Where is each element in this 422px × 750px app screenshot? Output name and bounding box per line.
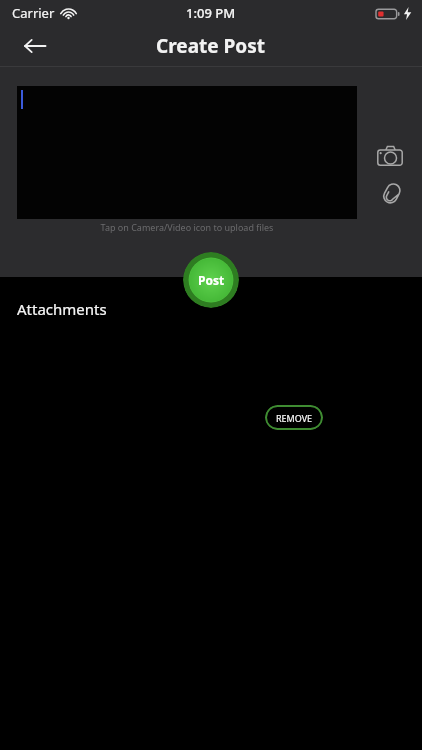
button[interactable]: Camera	[370, 136, 410, 176]
staticText: Attachments	[17, 299, 107, 319]
button[interactable]: Attach file	[370, 177, 410, 217]
button[interactable]	[17, 86, 357, 219]
staticText: 1:09 PM	[186, 4, 236, 22]
staticText: Tap on Camera/Video icon to upload files	[17, 221, 357, 233]
staticText: Create Post	[156, 33, 266, 59]
staticText: Carrier	[12, 4, 55, 22]
button[interactable]: REMOVE	[265, 405, 323, 430]
staticText: REMOVE	[276, 412, 313, 424]
staticText: Post	[198, 272, 225, 288]
button[interactable]: Back	[14, 26, 56, 66]
button[interactable]: Post	[183, 252, 239, 308]
